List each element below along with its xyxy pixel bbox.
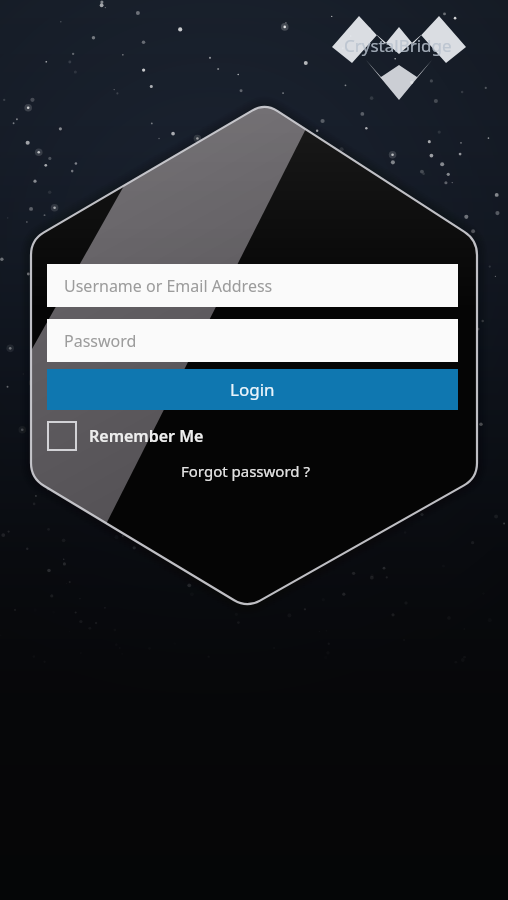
button[interactable]: Password (47, 319, 458, 362)
staticText: Password (64, 330, 137, 352)
button[interactable]: Remember Me (47, 421, 204, 451)
staticText: Login (230, 378, 275, 401)
button[interactable]: Username or Email Address (47, 264, 458, 307)
staticText: Remember Me (89, 425, 204, 447)
button[interactable]: CrystalBridge logo (326, 2, 474, 104)
staticText: Forgot password ? (181, 461, 310, 481)
staticText: CrystalBridge (344, 34, 452, 57)
staticText: Username or Email Address (64, 275, 273, 297)
button[interactable]: Login (47, 369, 458, 410)
button[interactable]: Forgot password ? (181, 461, 310, 481)
